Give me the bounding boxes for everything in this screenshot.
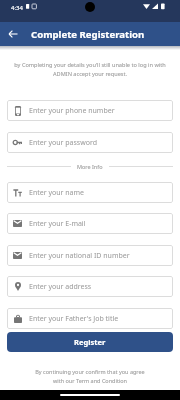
staticText: By continuing your confirm that you agre… (7, 368, 173, 385)
staticText: Enter your phone number (29, 106, 115, 116)
staticText: Enter your name (29, 188, 84, 198)
button[interactable]: Enter your Father's Job title (7, 308, 173, 329)
button[interactable]: Enter your E-mail (7, 213, 173, 234)
staticText: Register (74, 337, 106, 347)
button[interactable]: Enter your password (7, 132, 173, 153)
staticText: Enter your E-mail (29, 219, 86, 229)
staticText: by Completing your details you'll still … (7, 61, 173, 78)
staticText: More Info (77, 163, 103, 170)
staticText: 4:34 (11, 4, 23, 12)
staticText: Enter your password (29, 138, 97, 148)
button[interactable]: Register (7, 332, 173, 352)
button[interactable]: Enter your address (7, 276, 173, 297)
staticText: Enter your Father's Job title (29, 314, 119, 324)
staticText: Complete Registeration (31, 28, 145, 41)
button[interactable]: Enter your name (7, 182, 173, 203)
button[interactable]: Enter your national ID number (7, 245, 173, 266)
button[interactable]: Enter your phone number (7, 100, 173, 121)
button[interactable]: Back (0, 22, 25, 46)
staticText: Enter your address (29, 282, 92, 292)
staticText: Enter your national ID number (29, 251, 130, 261)
